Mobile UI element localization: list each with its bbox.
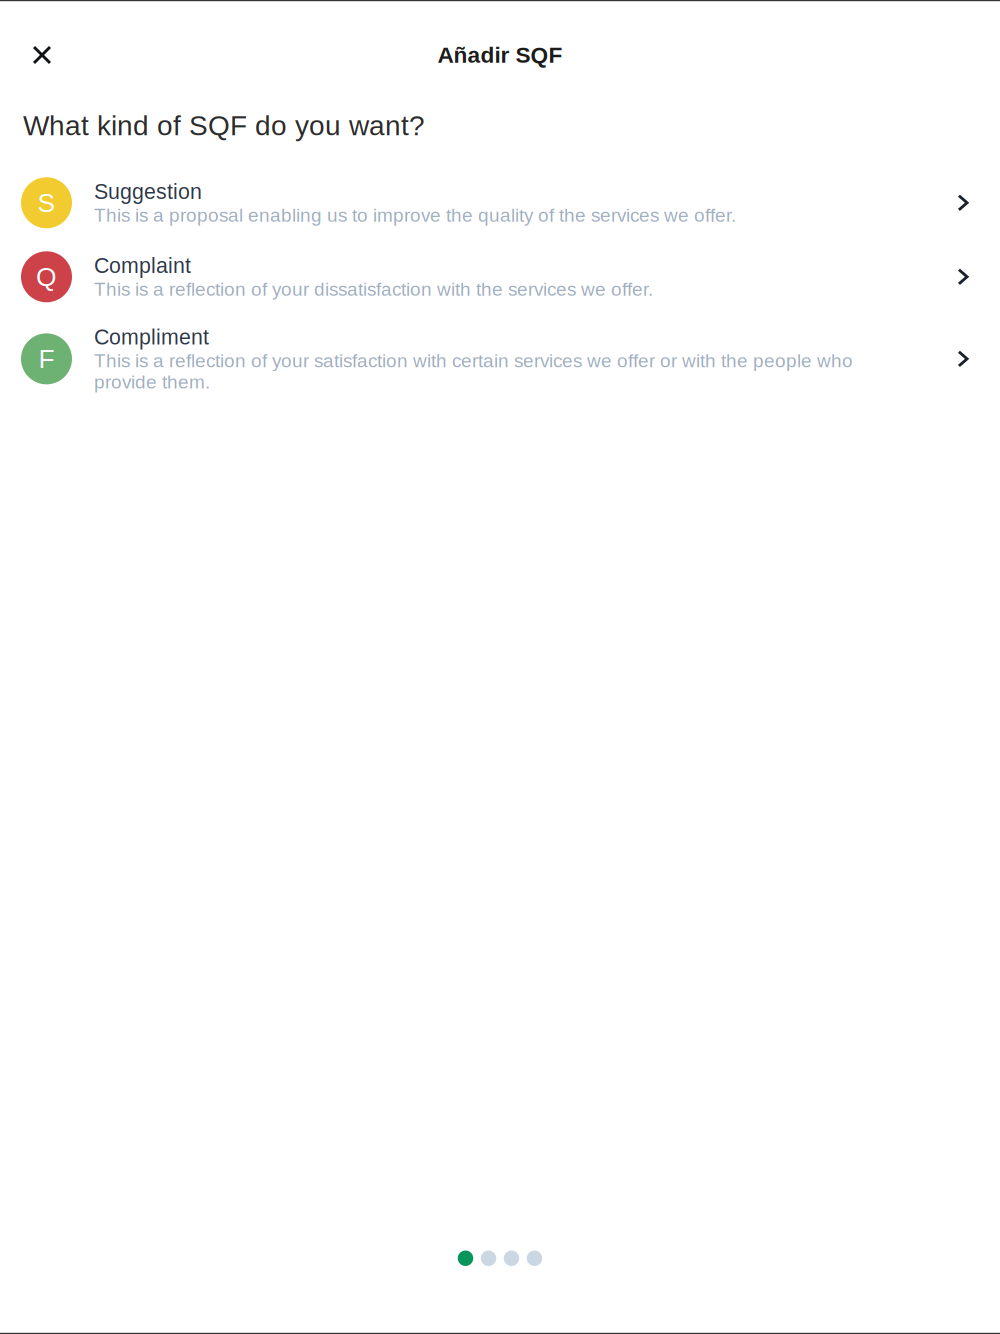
button[interactable]: Suggestion. This is a proposal enabling … [0,177,1000,228]
staticText: This is a reflection of your satisfactio… [94,350,853,392]
staticText: Q [36,262,57,291]
staticText: Compliment [94,325,209,349]
staticText: Suggestion [94,180,202,204]
staticText: S [37,188,55,217]
button[interactable]: Compliment. This is a reflection of your… [0,302,1000,392]
button[interactable]: Complaint. This is a reflection of your … [0,228,1000,302]
staticText: Complaint [94,254,191,278]
staticText: F [38,344,54,374]
staticText: Añadir SQF [437,42,562,68]
staticText: What kind of SQF do you want? [23,110,425,141]
staticText: This is a reflection of your dissatisfac… [94,279,653,300]
staticText: This is a proposal enabling us to improv… [94,205,736,226]
button[interactable]: Close [20,33,64,77]
